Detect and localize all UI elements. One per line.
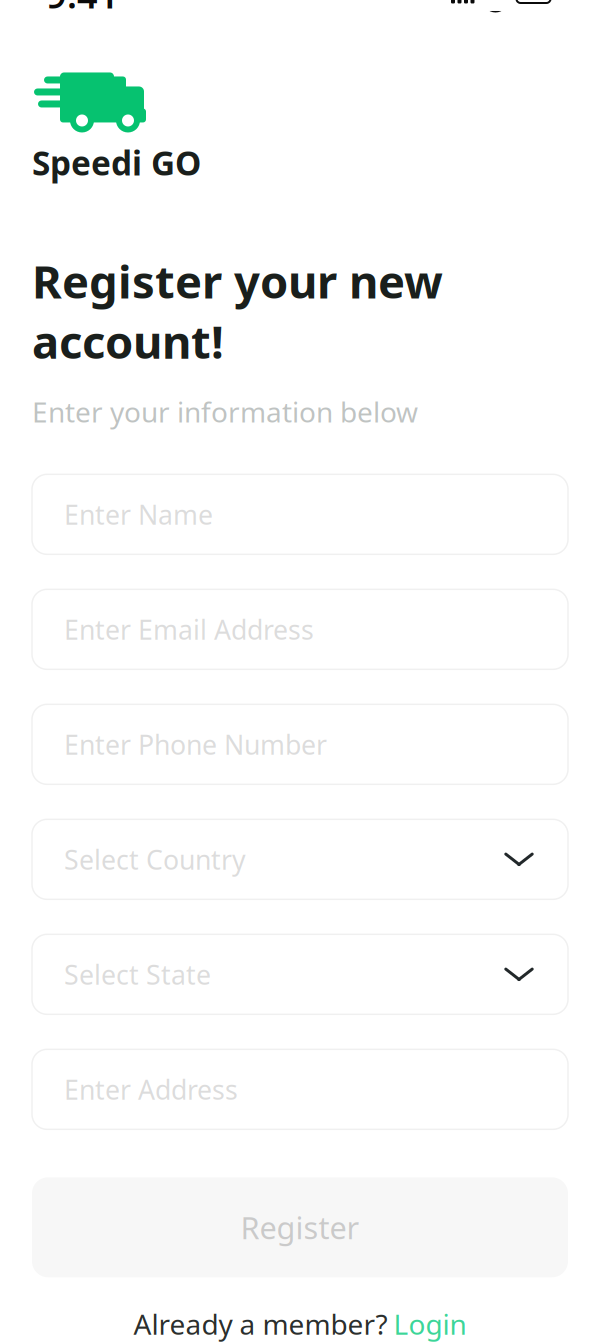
button[interactable]: Enter Phone Number [32,704,568,784]
staticText: 9:41 [46,0,119,18]
button[interactable]: Enter Name [32,474,568,554]
staticText: Enter Name [64,497,213,532]
staticText: Already a member? [133,1305,387,1342]
staticText: Register your new account! [32,251,443,371]
staticText: Enter Email Address [64,612,314,647]
staticText: Enter Phone Number [64,727,327,762]
staticText: Select State [64,957,211,992]
staticText: Login [393,1305,466,1342]
staticText: Register [240,1207,359,1248]
staticText: Enter Address [64,1072,238,1107]
button[interactable]: Enter Email Address [32,589,568,669]
button[interactable]: Enter Address [32,1049,568,1129]
button[interactable]: Login [393,1305,466,1342]
button[interactable]: Select Country [32,819,568,899]
staticText: Enter your information below [32,393,418,430]
staticText: Select Country [64,842,246,877]
button[interactable]: Register [32,1177,568,1277]
staticText: Speedi GO [32,140,201,185]
button[interactable]: Select State [32,934,568,1014]
